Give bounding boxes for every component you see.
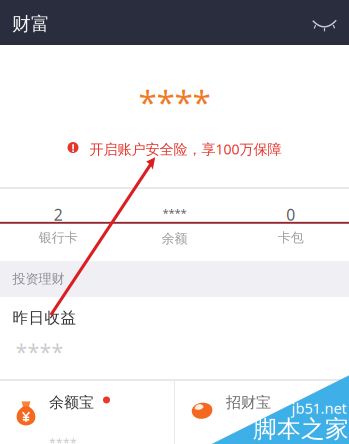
staticText: 开启账户安全险，享100万保障: [89, 139, 281, 159]
staticText: 0: [286, 204, 295, 225]
button[interactable]: 招财宝: [175, 381, 349, 444]
staticText: jb51.net: [291, 398, 346, 418]
button[interactable]: 开启账户安全险，享100万保障: [63, 135, 285, 163]
staticText: ****: [138, 79, 210, 124]
button[interactable]: Hide balance: [301, 0, 349, 45]
staticText: ****: [226, 435, 254, 444]
staticText: 余额: [161, 230, 187, 247]
staticText: 脚本之家: [253, 414, 349, 444]
staticText: 卡包: [278, 229, 304, 246]
button[interactable]: 2: [0, 189, 116, 261]
button[interactable]: ****: [116, 189, 233, 261]
staticText: 银行卡: [39, 229, 78, 246]
staticText: ****: [15, 337, 63, 366]
staticText: 余额宝: [49, 393, 94, 412]
staticText: 昨日收益: [12, 308, 76, 328]
button[interactable]: 0: [233, 189, 349, 261]
button[interactable]: 余额宝: [0, 381, 174, 444]
staticText: 财富: [12, 12, 50, 36]
staticText: 投资理财: [12, 271, 64, 287]
staticText: ****: [162, 205, 186, 220]
button[interactable]: 昨日收益: [0, 297, 349, 379]
staticText: 2: [54, 204, 63, 225]
staticText: ****: [49, 435, 77, 444]
staticText: 招财宝: [226, 393, 271, 412]
